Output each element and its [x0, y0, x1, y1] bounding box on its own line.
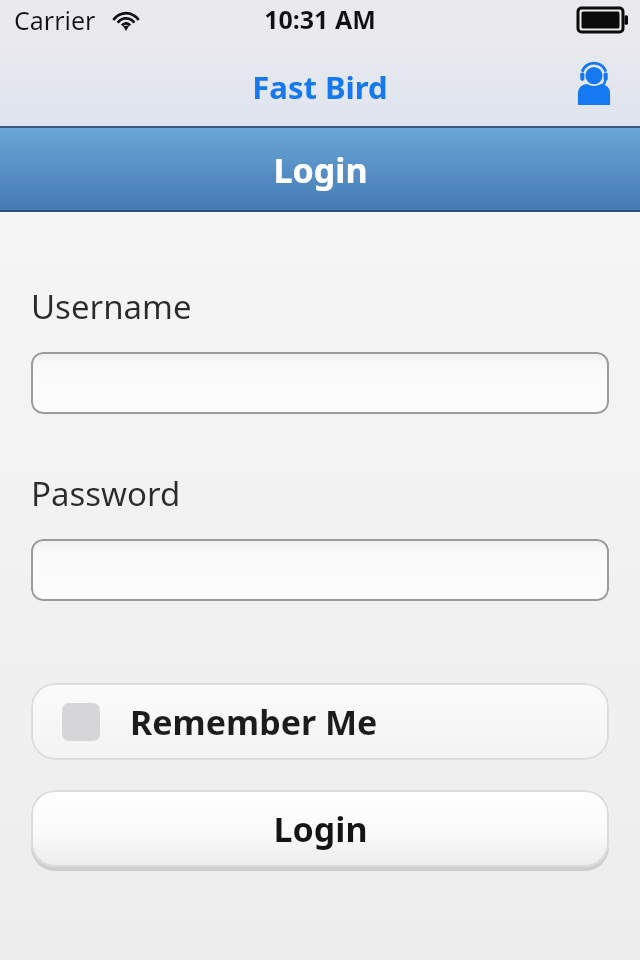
button[interactable]: Password [31, 539, 609, 601]
button[interactable]: Username [31, 352, 609, 414]
staticText: Fast Bird [252, 66, 388, 108]
staticText: Username [31, 284, 192, 329]
button[interactable]: Support agent [566, 56, 622, 112]
staticText: Login [273, 147, 368, 193]
staticText: Carrier [14, 3, 96, 37]
staticText: Login [273, 806, 368, 852]
staticText: Remember Me [130, 699, 378, 745]
staticText: Password [31, 471, 181, 516]
button[interactable]: Login [31, 790, 609, 867]
button[interactable]: Remember Me [31, 683, 609, 760]
staticText: 10:31 AM [264, 2, 376, 36]
